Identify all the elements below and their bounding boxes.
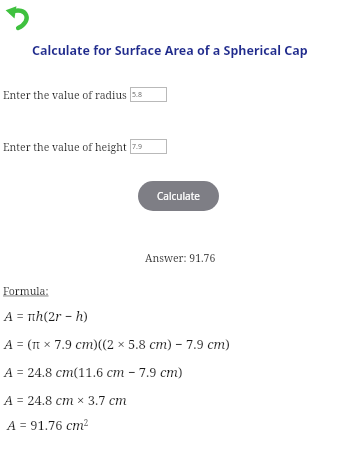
staticText: Enter the value of height	[3, 140, 127, 154]
staticText: Enter the value of radius	[3, 88, 127, 102]
staticText: Calculate	[157, 189, 200, 203]
staticText: A = 24.8 cm × 3.7 cm	[4, 391, 127, 409]
button[interactable]: Back	[4, 3, 34, 33]
staticText: Answer: 91.76	[145, 251, 216, 265]
button[interactable]: Radius value	[130, 87, 167, 102]
staticText: 5.8	[132, 90, 142, 100]
staticText: A = 24.8 cm(11.6 cm − 7.9 cm)	[4, 363, 183, 381]
staticText: A = 91.76 cm2	[7, 416, 89, 434]
staticText: A = (π × 7.9 cm)((2 × 5.8 cm) − 7.9 cm)	[4, 335, 230, 353]
staticText: Formula:	[3, 284, 49, 298]
staticText: 7.9	[132, 142, 142, 152]
button[interactable]: Calculate	[138, 181, 219, 211]
staticText: Calculate for Surface Area of a Spherica…	[32, 42, 308, 59]
button[interactable]: Height value	[130, 139, 167, 154]
staticText: A = πh(2r − h)	[4, 307, 88, 325]
